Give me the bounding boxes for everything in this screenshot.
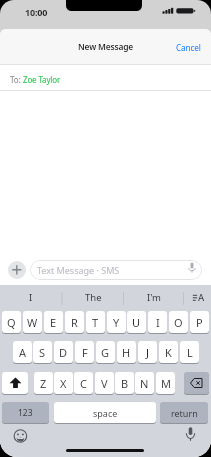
button[interactable]: S: [33, 341, 52, 363]
staticText: 123: [18, 407, 33, 419]
staticText: W: [27, 315, 38, 330]
button[interactable]: [8, 261, 26, 279]
button[interactable]: [2, 372, 28, 394]
button[interactable]: R: [65, 311, 84, 333]
staticText: I: [156, 315, 160, 330]
staticText: Text Message · SMS: [37, 264, 120, 276]
staticText: Cancel: [176, 42, 201, 53]
staticText: B: [121, 376, 129, 391]
button[interactable]: O: [169, 311, 188, 333]
staticText: R: [71, 315, 78, 330]
staticText: I: [29, 291, 33, 304]
staticText: U: [132, 315, 141, 330]
button[interactable]: H: [117, 341, 136, 363]
staticText: A: [198, 291, 205, 304]
staticText: F: [82, 345, 88, 360]
staticText: X: [60, 376, 67, 391]
staticText: New Message: [78, 41, 134, 53]
staticText: To:: [10, 74, 23, 85]
button[interactable]: X: [54, 372, 73, 394]
button[interactable]: U: [127, 311, 146, 333]
staticText: P: [196, 315, 203, 330]
button[interactable]: [13, 429, 28, 444]
button[interactable]: To:: [0, 65, 211, 90]
button[interactable]: C: [74, 372, 93, 394]
staticText: Y: [113, 315, 120, 330]
button[interactable]: 123: [2, 402, 49, 423]
button[interactable]: [184, 285, 211, 310]
staticText: M: [161, 376, 171, 391]
button[interactable]: K: [159, 341, 178, 363]
staticText: S: [39, 345, 46, 360]
button[interactable]: N: [135, 372, 154, 394]
staticText: The: [85, 291, 102, 304]
staticText: L: [187, 345, 193, 360]
button[interactable]: G: [96, 341, 115, 363]
staticText: C: [80, 376, 87, 391]
button[interactable]: A: [13, 341, 32, 363]
button[interactable]: B: [115, 372, 134, 394]
button[interactable]: M: [156, 372, 175, 394]
staticText: J: [146, 345, 150, 360]
button[interactable]: D: [54, 341, 73, 363]
staticText: Q: [7, 315, 16, 330]
staticText: Z: [40, 376, 47, 391]
button[interactable]: Cancel: [176, 42, 201, 53]
button[interactable]: Q: [2, 311, 21, 333]
staticText: A: [19, 345, 27, 360]
button[interactable]: L: [180, 341, 199, 363]
staticText: T: [92, 315, 99, 330]
staticText: I'm: [147, 291, 161, 304]
button[interactable]: Z: [34, 372, 53, 394]
button[interactable]: V: [95, 372, 114, 394]
staticText: E: [50, 315, 57, 330]
button[interactable]: Y: [107, 311, 126, 333]
button[interactable]: P: [190, 311, 209, 333]
staticText: return: [171, 407, 198, 419]
button[interactable]: return: [160, 402, 208, 423]
staticText: 10:00: [25, 6, 48, 18]
staticText: space: [93, 407, 118, 419]
button[interactable]: F: [75, 341, 94, 363]
staticText: V: [101, 376, 108, 391]
staticText: G: [101, 345, 110, 360]
staticText: O: [174, 315, 183, 330]
staticText: K: [165, 345, 172, 360]
button[interactable]: I: [0, 285, 62, 310]
staticText: D: [59, 345, 68, 360]
button[interactable]: E: [44, 311, 63, 333]
staticText: H: [122, 345, 131, 360]
button[interactable]: [185, 426, 197, 442]
button[interactable]: Text Message · SMS: [30, 260, 202, 280]
button[interactable]: The: [62, 285, 124, 310]
button[interactable]: I: [148, 311, 167, 333]
button[interactable]: space: [54, 402, 156, 423]
button[interactable]: J: [138, 341, 157, 363]
button[interactable]: W: [23, 311, 42, 333]
button[interactable]: T: [86, 311, 105, 333]
button[interactable]: [184, 372, 209, 394]
staticText: N: [140, 376, 149, 391]
staticText: Zoe Taylor: [23, 74, 61, 85]
button[interactable]: I'm: [124, 285, 184, 310]
